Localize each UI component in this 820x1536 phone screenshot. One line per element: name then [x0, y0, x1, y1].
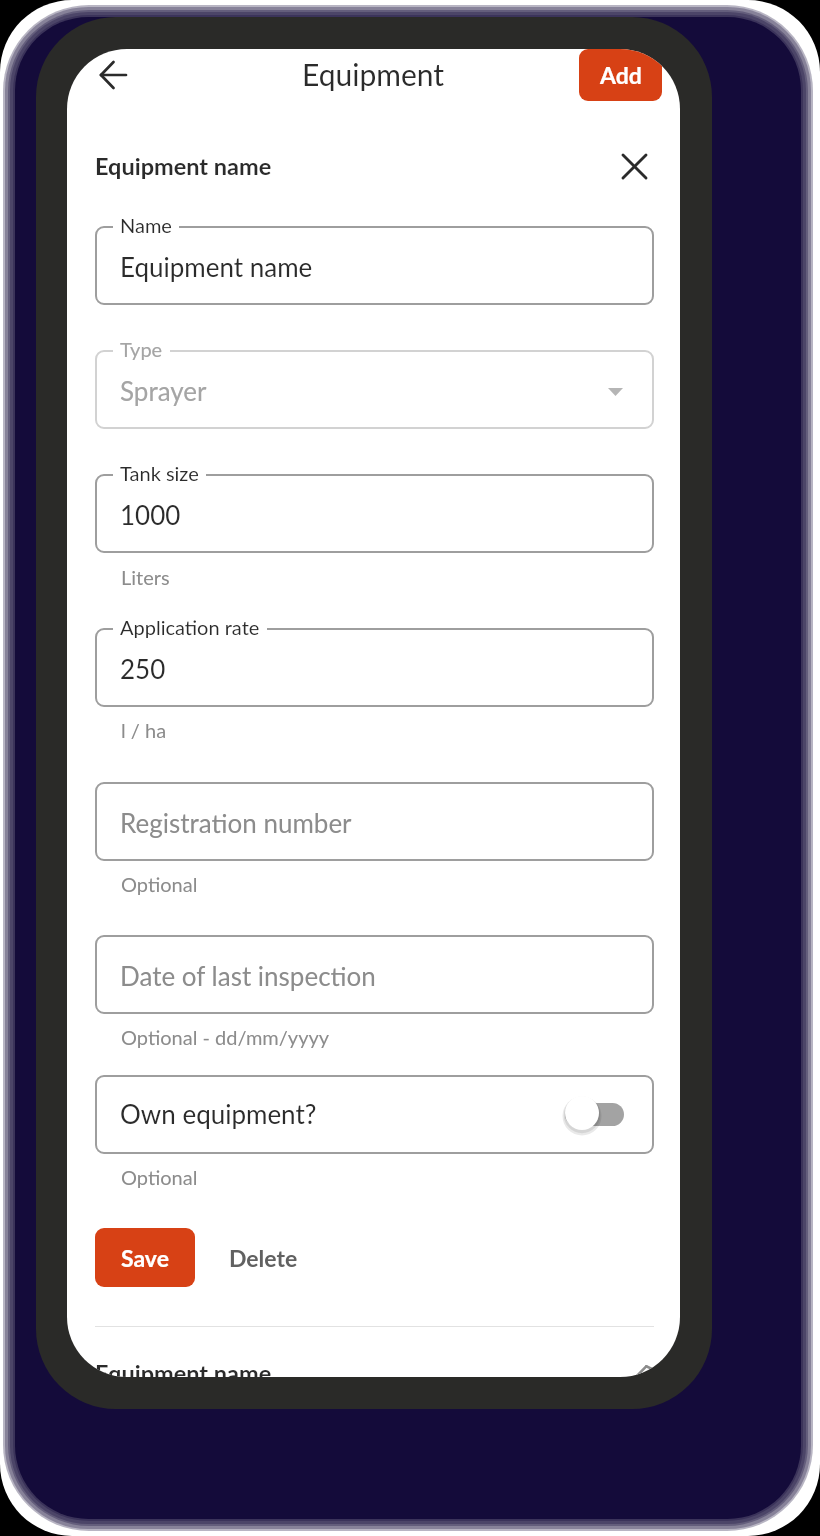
staticText: Tank size	[120, 461, 199, 485]
other: Own equipment	[565, 1103, 624, 1126]
staticText: Optional - dd/mm/yyyy	[121, 1025, 330, 1049]
button[interactable]: Own equipment?	[95, 1075, 654, 1154]
staticText: Optional	[121, 872, 198, 896]
button[interactable]: Add	[579, 49, 662, 101]
staticText: Liters	[121, 565, 170, 589]
button[interactable]: Save	[95, 1228, 195, 1287]
staticText: Registration number	[120, 807, 352, 838]
button[interactable]: Equipment name	[95, 1359, 654, 1377]
staticText: Own equipment?	[120, 1098, 317, 1129]
staticText: l / ha	[121, 718, 167, 742]
staticText: Application rate	[120, 615, 260, 639]
staticText: Add	[600, 61, 642, 89]
staticText: Equipment name	[120, 251, 313, 282]
button[interactable]: Delete	[210, 1228, 334, 1287]
staticText: Delete	[229, 1244, 298, 1272]
button[interactable]: Back	[85, 49, 141, 103]
staticText: Date of last inspection	[120, 960, 376, 991]
staticText: Optional	[121, 1165, 198, 1189]
staticText: Sprayer	[120, 375, 207, 406]
staticText: 250	[120, 653, 166, 684]
staticText: Name	[120, 213, 172, 237]
staticText: 1000	[120, 499, 181, 530]
staticText: Type	[120, 337, 163, 361]
button[interactable]: Close	[606, 138, 663, 195]
staticText: Equipment name	[95, 152, 272, 180]
staticText: Equipment	[302, 56, 445, 92]
staticText: Equipment name	[95, 1359, 272, 1377]
staticText: Save	[121, 1244, 169, 1272]
